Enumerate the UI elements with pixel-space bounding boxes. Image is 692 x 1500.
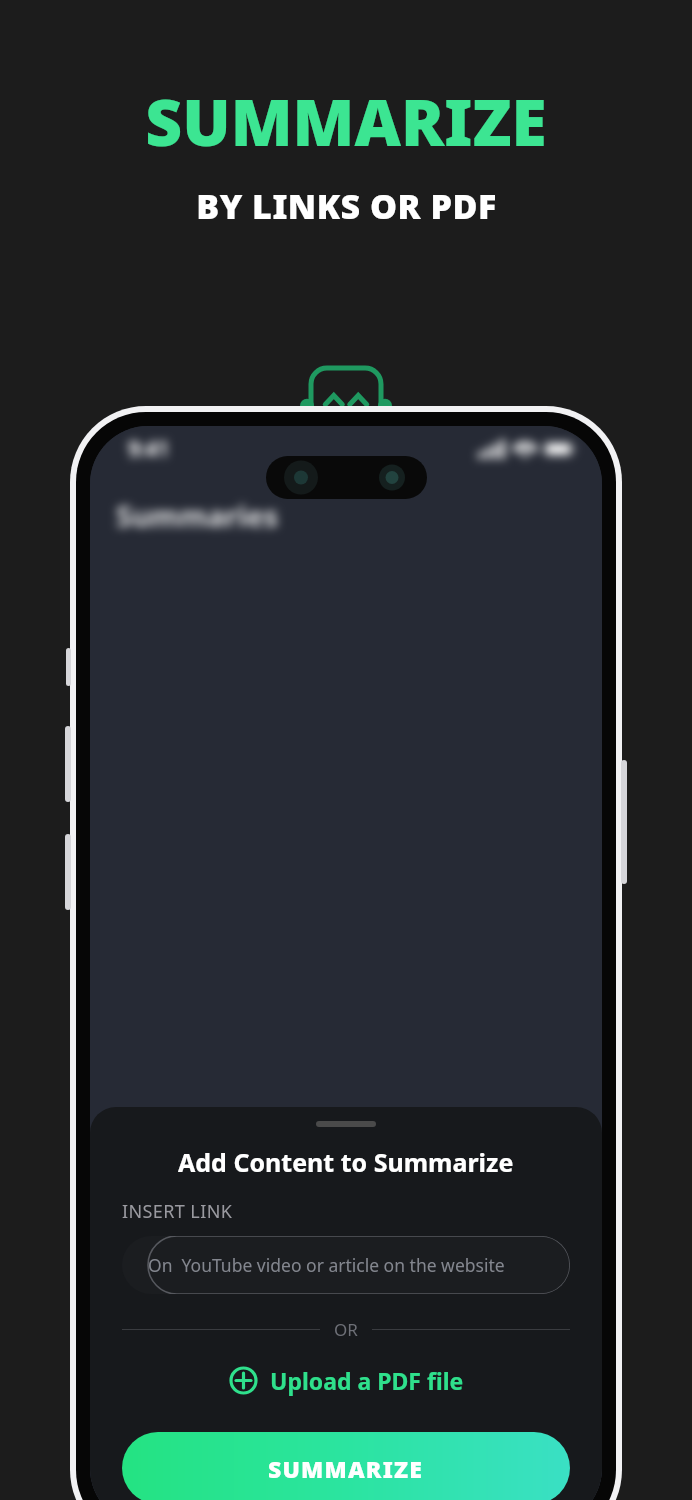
staticText: OR: [334, 1318, 358, 1341]
staticText: SUMMARIZE: [145, 78, 547, 165]
staticText: SUMMARIZE: [268, 1453, 424, 1484]
staticText: Summaries: [116, 496, 279, 535]
button[interactable]: Upload a PDF file: [221, 1359, 472, 1402]
button[interactable]: Add summary: [318, 1458, 374, 1500]
staticText: Upload a PDF file: [270, 1365, 464, 1396]
staticText: INSERT LINK: [122, 1199, 233, 1224]
button[interactable]: SUMMARIZE: [122, 1432, 570, 1500]
staticText: BY LINKS OR PDF: [196, 183, 497, 229]
button[interactable]: On YouTube video or article on the websi…: [122, 1236, 570, 1294]
staticText: There's nothing here yet: [212, 1270, 480, 1301]
staticText: Add Content to Summarize: [178, 1145, 514, 1179]
staticText: Create a first text summary: [231, 1307, 461, 1332]
staticText: 9:41: [128, 435, 170, 464]
staticText: On YouTube video or article on the websi…: [148, 1253, 505, 1277]
